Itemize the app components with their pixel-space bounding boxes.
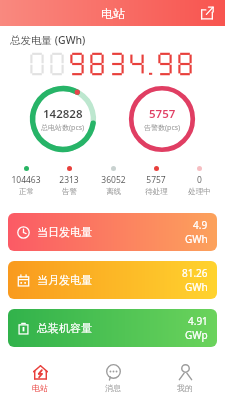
button[interactable]: 104463 bbox=[5, 165, 47, 197]
staticText: 142828 bbox=[43, 106, 83, 122]
staticText: 告警数(pcs) bbox=[144, 123, 181, 133]
staticText: 待处理 bbox=[145, 187, 168, 196]
staticText: 处理中 bbox=[188, 187, 211, 196]
button[interactable]: 5757 bbox=[126, 83, 198, 155]
button[interactable]: 总装机容量 bbox=[8, 309, 217, 347]
button[interactable]: 分享 bbox=[197, 3, 217, 23]
staticText: 正常 bbox=[19, 187, 34, 196]
button[interactable]: 0 bbox=[178, 165, 220, 197]
staticText: 告警 bbox=[62, 187, 77, 196]
staticText: 电站 bbox=[32, 383, 48, 393]
staticText: 4.91 bbox=[188, 314, 208, 328]
button[interactable]: 当日发电量 bbox=[8, 213, 217, 251]
button[interactable]: 电站 bbox=[8, 361, 72, 396]
staticText: GWh bbox=[185, 280, 208, 294]
staticText: 5757 bbox=[146, 174, 166, 186]
staticText: 81.26 bbox=[182, 266, 208, 280]
staticText: 总电站数(pcs) bbox=[41, 123, 85, 133]
button[interactable]: 142828 bbox=[27, 83, 99, 155]
button[interactable]: 当月发电量 bbox=[8, 261, 217, 299]
button[interactable]: 我的 bbox=[153, 361, 217, 396]
staticText: 2313 bbox=[59, 174, 79, 186]
button[interactable]: 消息 bbox=[81, 361, 145, 396]
staticText: 5757 bbox=[149, 106, 176, 122]
staticText: 消息 bbox=[105, 383, 121, 393]
staticText: 当月发电量 bbox=[37, 273, 92, 287]
button[interactable]: 2313 bbox=[48, 165, 90, 197]
staticText: GWh bbox=[185, 232, 208, 246]
button[interactable]: 36052 bbox=[92, 165, 134, 197]
staticText: 104463 bbox=[11, 174, 41, 186]
staticText: 离线 bbox=[106, 187, 121, 196]
staticText: 4.9 bbox=[193, 218, 208, 232]
button[interactable]: 5757 bbox=[135, 165, 177, 197]
staticText: 当日发电量 bbox=[37, 225, 92, 239]
staticText: 0 bbox=[197, 174, 202, 186]
staticText: 总装机容量 bbox=[37, 321, 92, 335]
staticText: 36052 bbox=[101, 174, 126, 186]
staticText: 我的 bbox=[177, 383, 193, 393]
staticText: 总发电量 (GWh) bbox=[10, 33, 86, 47]
staticText: 电站 bbox=[101, 6, 125, 21]
staticText: GWp bbox=[185, 328, 208, 342]
